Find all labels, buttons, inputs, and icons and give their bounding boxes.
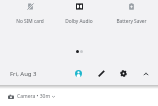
staticText: Camera • 30m xyxy=(17,93,51,100)
button[interactable]: Edit xyxy=(94,66,108,80)
staticText: Battery Saver xyxy=(116,18,147,25)
button[interactable]: Dolby Audio xyxy=(53,0,105,26)
button[interactable]: No SIM card xyxy=(4,0,56,26)
staticText: No SIM card xyxy=(16,18,44,25)
staticText: Dolby Audio xyxy=(65,18,93,25)
staticText: Fri, Aug 3 xyxy=(10,70,37,78)
button[interactable]: Settings xyxy=(116,66,130,80)
button[interactable]: Battery Saver xyxy=(105,0,157,26)
button[interactable]: Camera • 30m xyxy=(0,89,158,106)
button[interactable]: Collapse xyxy=(139,67,153,81)
button[interactable]: Account xyxy=(71,66,85,80)
